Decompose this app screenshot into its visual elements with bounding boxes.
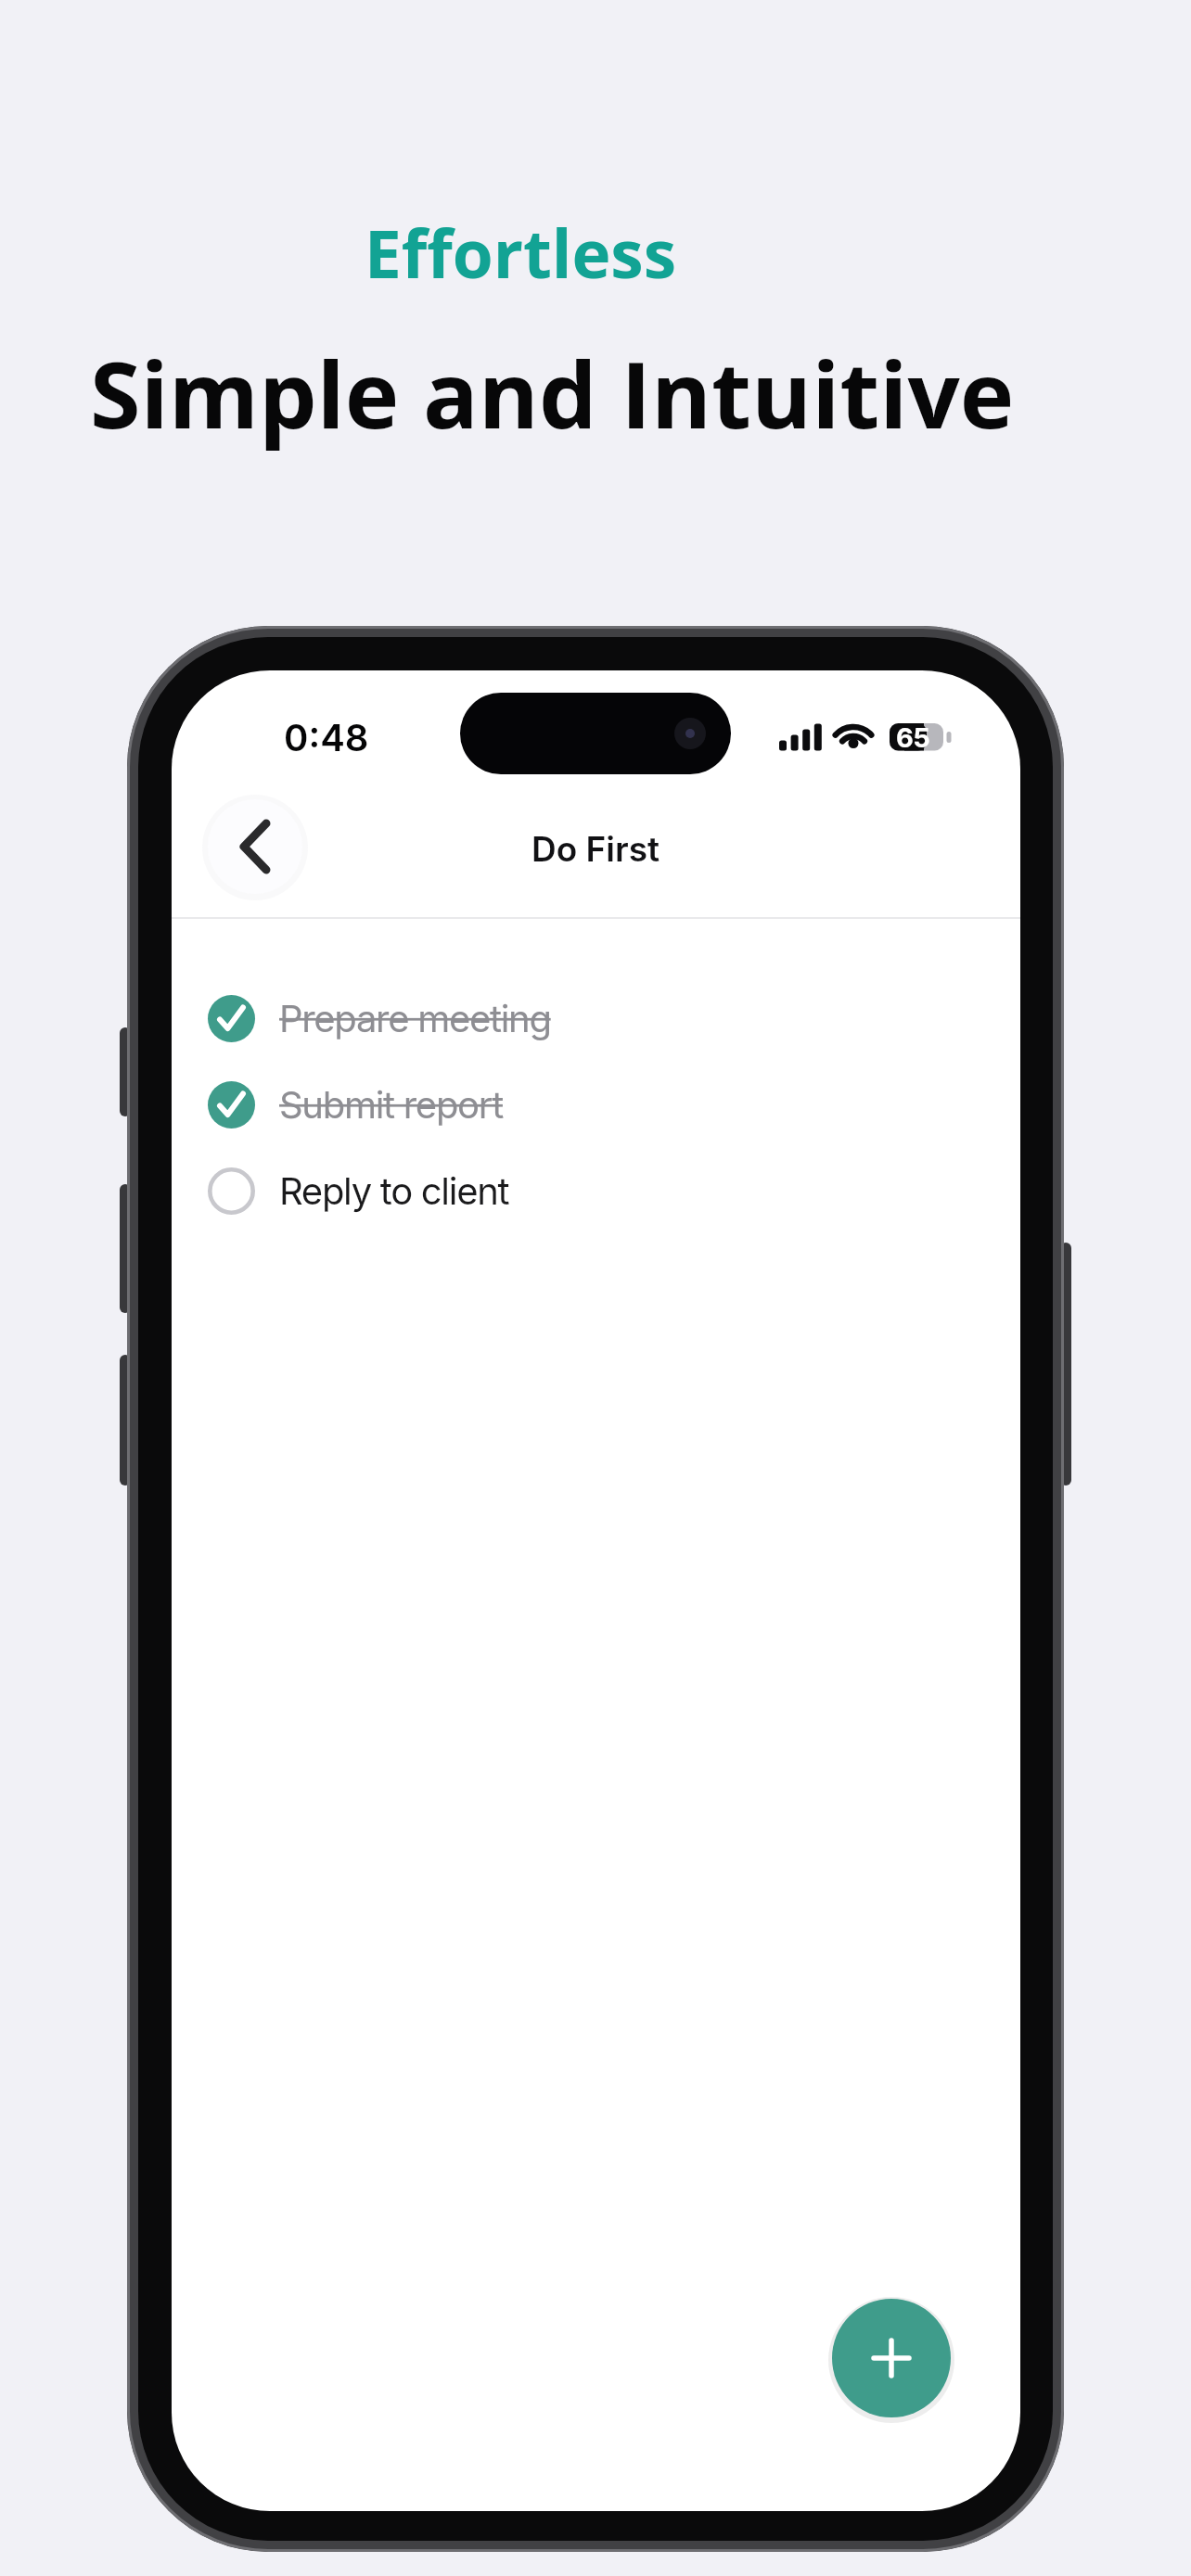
staticText: Submit report <box>279 1082 503 1127</box>
staticText: Simple and Intuitive <box>90 330 1015 455</box>
button[interactable] <box>832 2299 951 2417</box>
button[interactable]: Reply to client <box>199 1157 756 1224</box>
staticText: 65 <box>896 721 930 752</box>
staticText: Do First <box>531 828 660 870</box>
staticText: Prepare meeting <box>279 996 551 1040</box>
button[interactable] <box>208 799 302 894</box>
button[interactable]: Prepare meeting <box>199 985 756 1052</box>
button[interactable]: Submit report <box>199 1071 756 1138</box>
staticText: Effortless <box>365 208 676 298</box>
staticText: Reply to client <box>279 1168 509 1213</box>
staticText: 0:48 <box>284 715 369 759</box>
